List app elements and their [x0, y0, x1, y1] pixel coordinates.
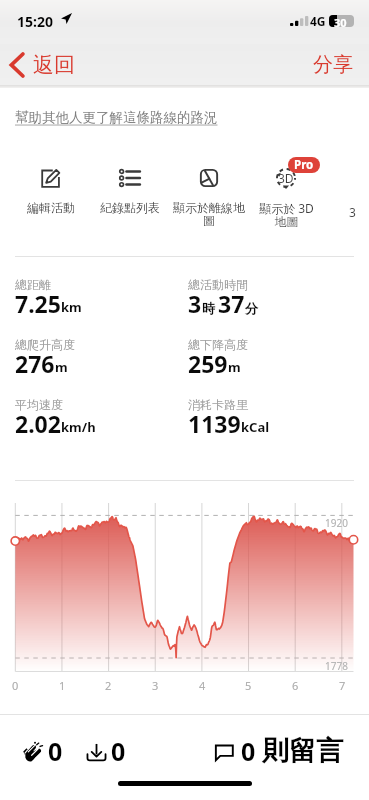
staticText: 則留言 [262, 734, 343, 768]
staticText: 分享 [313, 52, 353, 77]
staticText: Pro [294, 157, 314, 173]
staticText: 15:20 [17, 12, 53, 31]
staticText: 4G [310, 13, 326, 29]
button[interactable]: 編輯活動 [13, 158, 89, 215]
staticText: 分 [245, 300, 258, 316]
staticText: 0 [12, 678, 19, 693]
staticText: 3 [188, 288, 202, 319]
staticText: 276 [15, 348, 55, 379]
staticText: 總活動時間 [188, 277, 248, 292]
staticText: m [55, 358, 68, 376]
staticText: 5 [245, 678, 252, 693]
staticText: 紀錄點列表 [100, 200, 160, 215]
staticText: 3 [349, 204, 356, 220]
staticText: 1 [59, 678, 66, 693]
staticText: 7 [339, 678, 346, 693]
staticText: 編輯活動 [27, 200, 75, 215]
staticText: kCal [241, 418, 270, 436]
staticText: 6 [292, 678, 299, 693]
staticText: m [228, 358, 241, 376]
button[interactable]: 幫助其他人更了解這條路線的路況 [15, 109, 218, 126]
staticText: 時 [202, 300, 215, 316]
button[interactable]: 顯示於離線地圖 [171, 158, 247, 229]
button[interactable]: 紀錄點列表 [92, 158, 168, 215]
staticText: 總距離 [15, 277, 51, 292]
button[interactable]: 0 [213, 734, 343, 768]
staticText: 0 [111, 734, 126, 768]
staticText: 2 [105, 678, 112, 693]
staticText: 37 [218, 288, 245, 319]
staticText: 消耗卡路里 [188, 397, 248, 412]
staticText: 0 [241, 734, 256, 768]
button[interactable]: 返回 [5, 44, 97, 85]
staticText: 幫助其他人更了解這條路線的路況 [15, 109, 218, 126]
staticText: 1920 [325, 516, 348, 530]
staticText: 3D [278, 170, 294, 186]
button[interactable]: Kudos [22, 734, 63, 768]
staticText: 總爬升高度 [15, 337, 75, 352]
staticText: 7.25 [15, 288, 61, 319]
staticText: 總下降高度 [188, 337, 248, 352]
button[interactable]: 分享 [297, 44, 369, 85]
staticText: km/h [61, 418, 96, 436]
staticText: 4 [199, 678, 206, 693]
button[interactable]: Download [86, 734, 126, 768]
staticText: 顯示於離線地圖 [171, 200, 247, 229]
staticText: 1778 [325, 659, 348, 673]
staticText: 2.02 [15, 408, 61, 439]
button[interactable]: 3D [248, 158, 324, 230]
staticText: km [61, 298, 82, 316]
staticText: 0 [48, 734, 63, 768]
staticText: 30 [334, 15, 347, 27]
staticText: 平均速度 [15, 397, 63, 412]
staticText: 1139 [188, 408, 241, 439]
staticText: 3 [152, 678, 159, 693]
staticText: 259 [188, 348, 228, 379]
staticText: 返回 [33, 52, 75, 78]
staticText: 顯示於 3D 地圖 [259, 200, 314, 230]
